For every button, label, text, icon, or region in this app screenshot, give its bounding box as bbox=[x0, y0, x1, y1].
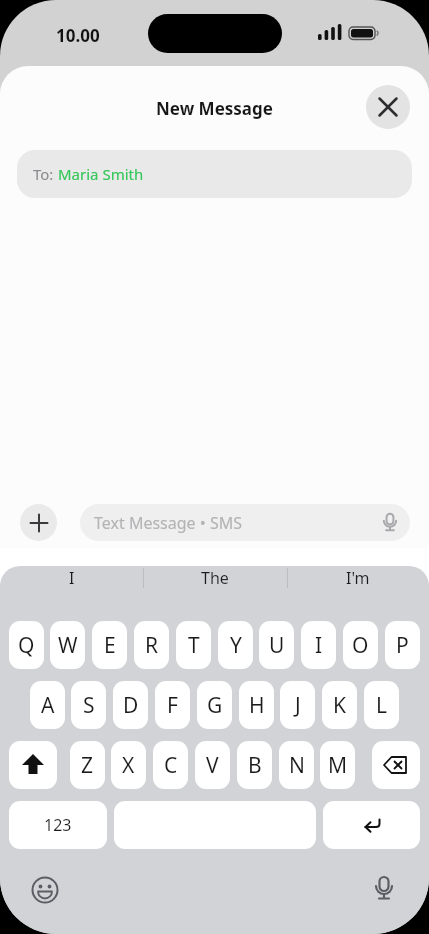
button[interactable]: T bbox=[176, 621, 211, 669]
button[interactable]: R bbox=[134, 621, 169, 669]
button[interactable] bbox=[372, 741, 420, 789]
staticText: C bbox=[164, 751, 178, 780]
button[interactable] bbox=[366, 85, 410, 129]
button[interactable]: D bbox=[113, 681, 148, 729]
button[interactable]: Z bbox=[70, 741, 105, 789]
button[interactable] bbox=[28, 873, 62, 907]
staticText: Z bbox=[81, 751, 94, 780]
button[interactable]: X bbox=[111, 741, 146, 789]
button[interactable] bbox=[114, 801, 316, 849]
staticText: Q bbox=[18, 631, 35, 660]
button[interactable]: O bbox=[343, 621, 378, 669]
staticText: P bbox=[396, 631, 409, 660]
button[interactable]: M bbox=[320, 741, 355, 789]
button[interactable]: Text Message • SMS bbox=[80, 504, 410, 541]
staticText: 10.00 bbox=[56, 24, 100, 47]
button[interactable]: Y bbox=[218, 621, 253, 669]
staticText: I bbox=[69, 567, 75, 589]
staticText: J bbox=[295, 691, 301, 720]
button[interactable]: H bbox=[239, 681, 274, 729]
staticText: G bbox=[207, 691, 223, 720]
staticText: B bbox=[248, 751, 262, 780]
staticText: S bbox=[83, 691, 95, 720]
button[interactable]: E bbox=[92, 621, 127, 669]
staticText: Y bbox=[230, 631, 242, 660]
staticText: Text Message • SMS bbox=[94, 512, 243, 534]
button[interactable]: N bbox=[279, 741, 314, 789]
button[interactable]: To: bbox=[17, 150, 412, 198]
staticText: X bbox=[122, 751, 135, 780]
button[interactable]: S bbox=[71, 681, 106, 729]
button[interactable]: I bbox=[0, 566, 143, 589]
button[interactable]: F bbox=[155, 681, 190, 729]
staticText: A bbox=[41, 691, 55, 720]
button[interactable]: L bbox=[364, 681, 399, 729]
button[interactable]: V bbox=[195, 741, 230, 789]
button[interactable] bbox=[20, 504, 57, 541]
staticText: T bbox=[188, 631, 200, 660]
button[interactable]: W bbox=[50, 621, 85, 669]
staticText: L bbox=[376, 691, 388, 720]
button[interactable]: U bbox=[259, 621, 294, 669]
button[interactable]: 123 bbox=[9, 801, 107, 849]
staticText: I'm bbox=[346, 567, 370, 589]
button[interactable]: C bbox=[153, 741, 188, 789]
staticText: H bbox=[249, 691, 265, 720]
staticText: New Message bbox=[156, 97, 273, 120]
staticText: K bbox=[333, 691, 346, 720]
button[interactable]: I'm bbox=[287, 566, 429, 589]
staticText: I bbox=[315, 631, 323, 660]
button[interactable]: G bbox=[197, 681, 232, 729]
button[interactable] bbox=[367, 872, 401, 906]
staticText: R bbox=[145, 631, 159, 660]
staticText: D bbox=[123, 691, 139, 720]
staticText: O bbox=[352, 631, 369, 660]
staticText: W bbox=[58, 631, 78, 660]
staticText: The bbox=[201, 567, 229, 589]
button[interactable]: A bbox=[30, 681, 65, 729]
staticText: F bbox=[167, 691, 178, 720]
staticText: V bbox=[206, 751, 219, 780]
staticText: To: bbox=[33, 164, 58, 184]
button[interactable]: B bbox=[237, 741, 272, 789]
staticText: N bbox=[289, 751, 305, 780]
staticText: M bbox=[328, 751, 348, 780]
button[interactable]: K bbox=[322, 681, 357, 729]
button[interactable]: I bbox=[301, 621, 336, 669]
staticText: E bbox=[104, 631, 116, 660]
staticText: U bbox=[269, 631, 285, 660]
staticText: Maria Smith bbox=[58, 164, 144, 184]
button[interactable]: The bbox=[143, 566, 287, 589]
button[interactable]: Q bbox=[9, 621, 44, 669]
staticText: 123 bbox=[44, 814, 72, 836]
button[interactable]: P bbox=[385, 621, 420, 669]
button[interactable] bbox=[323, 801, 420, 849]
button[interactable] bbox=[9, 741, 57, 789]
button[interactable]: J bbox=[280, 681, 315, 729]
